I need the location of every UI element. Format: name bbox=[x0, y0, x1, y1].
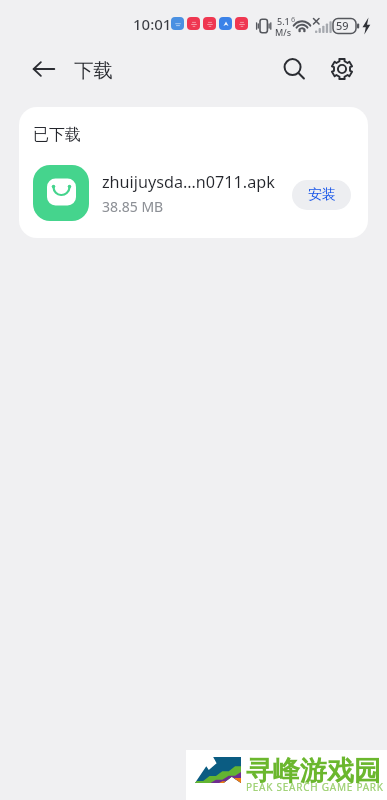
staticText: 38.85 MB bbox=[102, 197, 164, 216]
staticText: 下载 bbox=[74, 58, 113, 83]
staticText: 59 bbox=[336, 18, 349, 33]
staticText: 寻峰游戏园 bbox=[246, 754, 381, 788]
staticText: PEAK SEARCH GAME PARK bbox=[246, 780, 384, 794]
staticText: M/s bbox=[275, 26, 292, 38]
button[interactable]: zhuijuysda…n0711.apk bbox=[19, 160, 368, 226]
staticText: 6 bbox=[291, 14, 296, 24]
button[interactable]: 安装 bbox=[292, 180, 351, 210]
staticText: 安装 bbox=[308, 186, 336, 204]
button[interactable]: Search bbox=[274, 49, 314, 89]
staticText: zhuijuysda…n0711.apk bbox=[102, 171, 275, 193]
staticText: 5.1 bbox=[277, 15, 290, 27]
button[interactable]: Back bbox=[24, 49, 64, 89]
staticText: 已下载 bbox=[33, 125, 81, 145]
staticText: 10:01 bbox=[133, 14, 172, 34]
button[interactable]: Settings bbox=[322, 49, 362, 89]
